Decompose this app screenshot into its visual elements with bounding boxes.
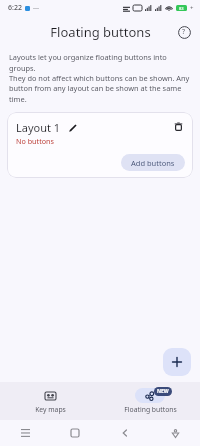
- staticText: Floating buttons: [124, 405, 177, 414]
- button[interactable]: Layout 1: [7, 112, 193, 178]
- staticText: They do not affect which buttons can be …: [9, 73, 190, 83]
- button[interactable]: Back: [115, 423, 135, 443]
- button[interactable]: NEW: [100, 382, 200, 420]
- staticText: 6:22: [8, 3, 22, 13]
- staticText: Floating buttons: [50, 23, 151, 41]
- button[interactable]: Delete layout: [170, 118, 187, 135]
- button[interactable]: Accessibility: [165, 423, 185, 443]
- button[interactable]: Home: [65, 423, 85, 443]
- staticText: Add buttons: [131, 158, 175, 168]
- button[interactable]: Recents: [15, 423, 35, 443]
- button[interactable]: Key maps: [0, 382, 100, 420]
- staticText: ?: [182, 27, 186, 37]
- staticText: 83: [179, 6, 184, 11]
- button[interactable]: Add buttons: [121, 154, 185, 171]
- staticText: button from any layout can be shown at t…: [9, 83, 191, 104]
- staticText: Layout 1: [16, 120, 61, 135]
- staticText: +: [190, 4, 194, 12]
- staticText: NEW: [157, 388, 169, 395]
- button[interactable]: Add layout: [163, 348, 191, 376]
- button[interactable]: Rename layout: [66, 121, 80, 135]
- staticText: Key maps: [35, 405, 66, 414]
- staticText: No buttons: [16, 136, 54, 146]
- staticText: Layouts let you organize floating button…: [9, 52, 191, 73]
- button[interactable]: Help: [173, 21, 195, 43]
